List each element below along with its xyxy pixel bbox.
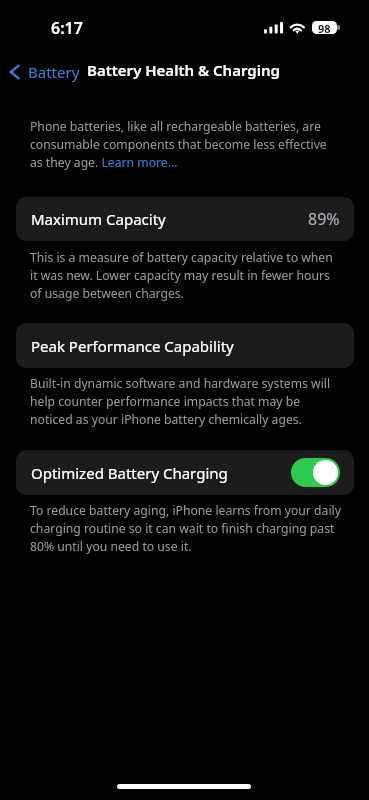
button[interactable]: Optimized Battery Charging xyxy=(16,450,354,495)
staticText: Battery Health & Charging xyxy=(87,60,280,80)
staticText: Peak Performance Capability xyxy=(31,336,234,356)
staticText: This is a measure of battery capacity re… xyxy=(30,249,341,302)
staticText: 6:17 xyxy=(51,17,83,39)
staticText: Phone batteries, like all rechargeable b… xyxy=(30,118,341,171)
staticText: 89% xyxy=(308,208,340,230)
staticText: Maximum Capacity xyxy=(31,209,166,229)
other: Wi-Fi connected xyxy=(288,18,308,34)
staticText: To reduce battery aging, iPhone learns f… xyxy=(30,502,341,555)
staticText: 98 xyxy=(318,21,331,34)
staticText: Battery xyxy=(28,62,80,82)
staticText: Optimized Battery Charging xyxy=(31,463,228,483)
button[interactable]: Back xyxy=(4,57,84,87)
button[interactable]: Peak Performance Capability xyxy=(16,323,354,368)
button[interactable]: Learn more about battery health xyxy=(30,118,341,171)
other: Back xyxy=(9,63,20,81)
staticText: Built-in dynamic software and hardware s… xyxy=(30,375,341,428)
other: Battery 98 percent xyxy=(312,21,337,34)
button[interactable]: Optimized Battery Charging toggle xyxy=(291,458,340,487)
button[interactable]: Maximum Capacity xyxy=(16,197,354,241)
other: Cellular signal strength xyxy=(264,20,285,34)
